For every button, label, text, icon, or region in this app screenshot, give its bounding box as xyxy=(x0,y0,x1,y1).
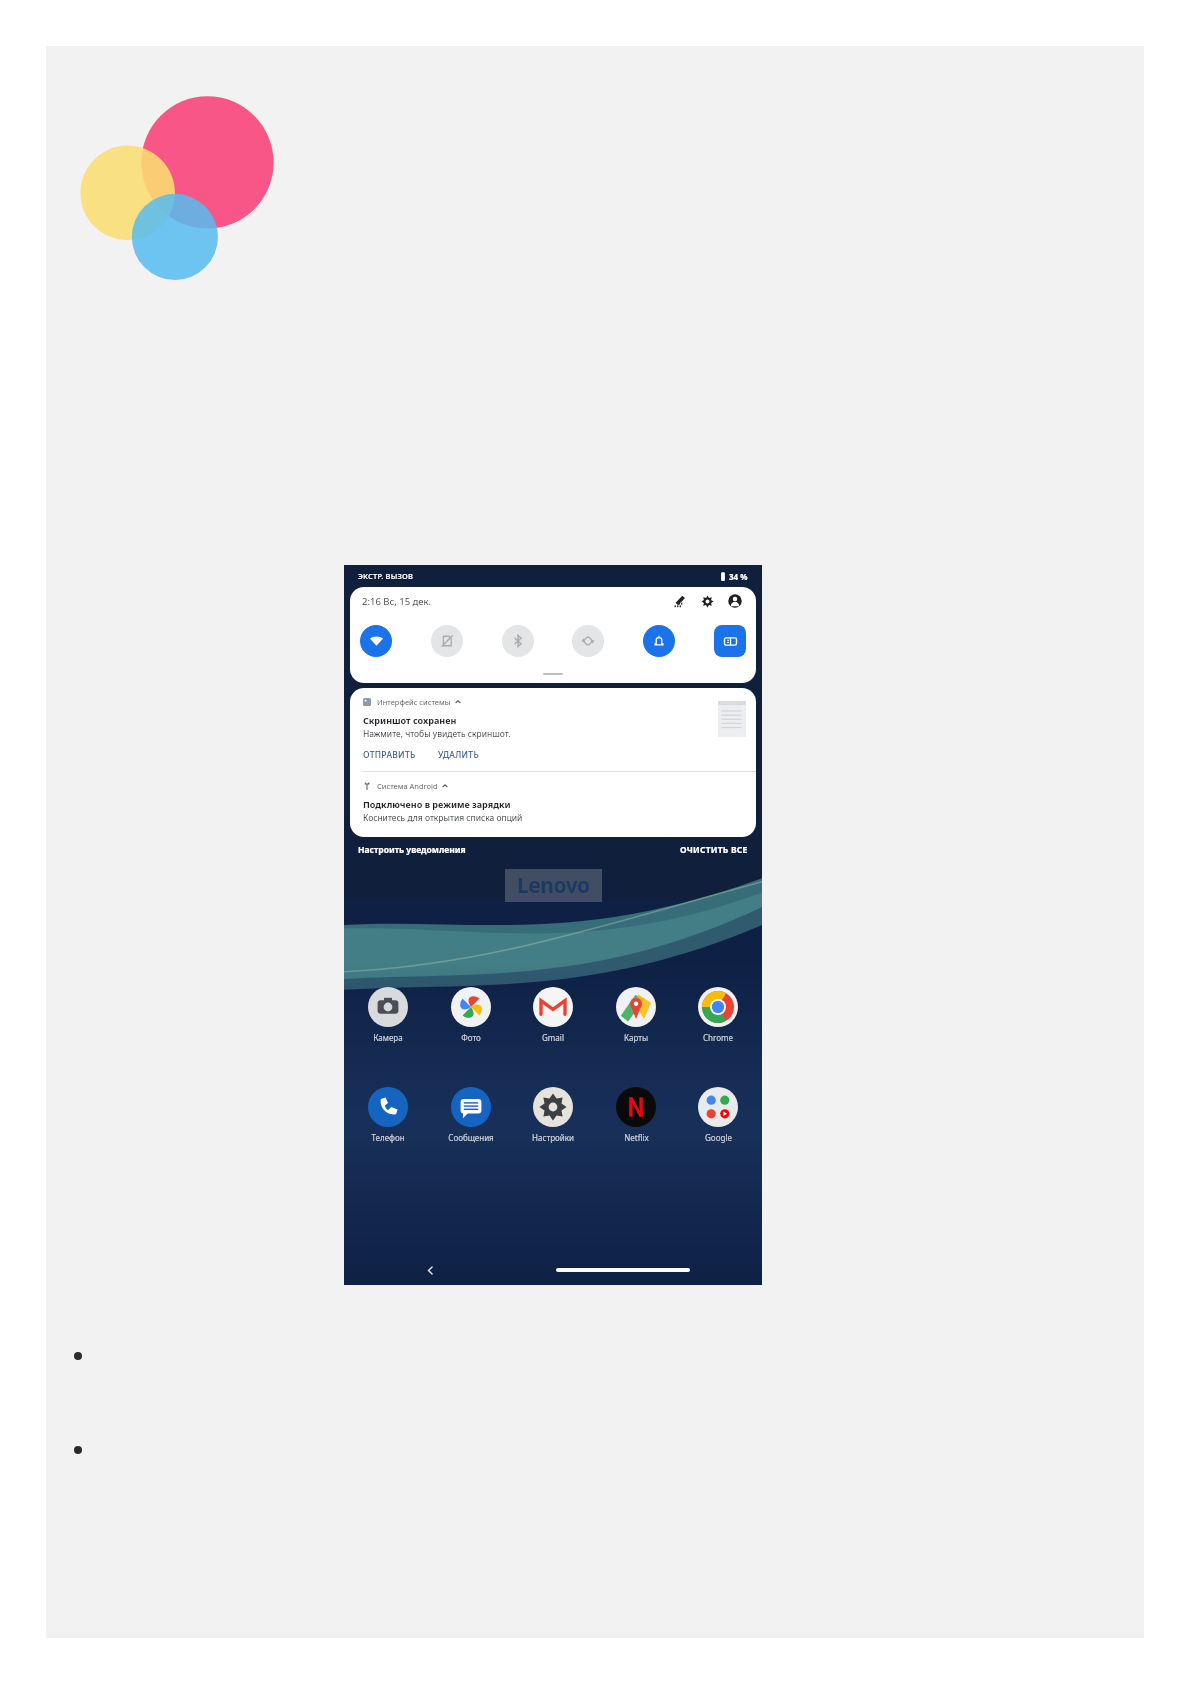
staticText: Интерфейс системы xyxy=(377,697,451,707)
button[interactable]: Gmail xyxy=(527,987,579,1043)
button[interactable]: Настройки xyxy=(527,1087,579,1143)
button[interactable]: Reading mode xyxy=(714,625,746,657)
staticText: Скриншот сохранен xyxy=(363,714,457,726)
button[interactable]: Do not disturb xyxy=(643,625,675,657)
staticText: Настройки xyxy=(532,1132,574,1143)
button[interactable]: SIM xyxy=(431,625,463,657)
staticText: Сообщения xyxy=(448,1132,494,1143)
staticText: ОЧИСТИТЬ ВСЕ xyxy=(680,844,748,856)
button[interactable]: Netflix xyxy=(610,1087,662,1143)
button[interactable]: Карты xyxy=(610,987,662,1043)
button[interactable]: Back xyxy=(422,1262,438,1278)
button[interactable]: Google xyxy=(692,1087,744,1143)
staticText: Chrome xyxy=(703,1032,733,1043)
button[interactable]: Wi-Fi xyxy=(360,625,392,657)
button[interactable]: Настроить уведомления xyxy=(358,844,466,856)
button[interactable]: Интерфейс системы xyxy=(350,688,756,771)
other: Lenovo logo xyxy=(72,86,282,282)
staticText: ЭКСТР. ВЫЗОВ xyxy=(358,571,414,581)
button[interactable]: Телефон xyxy=(362,1087,414,1143)
button[interactable]: Signal xyxy=(670,592,688,610)
button[interactable]: УДАЛИТЬ xyxy=(438,749,479,761)
button[interactable]: Auto rotate xyxy=(572,625,604,657)
staticText: Gmail xyxy=(542,1032,564,1043)
staticText: Система Android xyxy=(377,781,438,791)
staticText: Lenovo xyxy=(517,871,590,900)
button[interactable]: Chrome xyxy=(692,987,744,1043)
staticText: Фото xyxy=(461,1032,481,1043)
button[interactable]: Home xyxy=(556,1268,690,1272)
staticText: 34 % xyxy=(729,571,748,582)
staticText: Подключено в режиме зарядки xyxy=(363,798,511,810)
staticText: Настроить уведомления xyxy=(358,844,466,856)
staticText: Камера xyxy=(373,1032,403,1043)
staticText: Нажмите, чтобы увидеть скриншот. xyxy=(363,728,511,740)
button[interactable]: ОТПРАВИТЬ xyxy=(363,749,416,761)
button[interactable]: ОЧИСТИТЬ ВСЕ xyxy=(680,844,748,856)
staticText: ОТПРАВИТЬ xyxy=(363,749,416,761)
button[interactable]: User xyxy=(726,592,744,610)
staticText: Карты xyxy=(624,1032,648,1043)
staticText: 2:16 Вс, 15 дек. xyxy=(362,595,432,608)
button[interactable]: Settings xyxy=(698,592,716,610)
staticText: Телефон xyxy=(371,1132,405,1143)
button[interactable]: Сообщения xyxy=(445,1087,497,1143)
button[interactable]: Система Android xyxy=(350,772,756,837)
staticText: Google xyxy=(705,1132,732,1143)
button[interactable]: Фото xyxy=(445,987,497,1043)
button[interactable]: Bluetooth xyxy=(502,625,534,657)
button[interactable]: Камера xyxy=(362,987,414,1043)
staticText: Коснитесь для открытия списка опций xyxy=(363,812,523,824)
staticText: УДАЛИТЬ xyxy=(438,749,479,761)
staticText: Netflix xyxy=(624,1132,649,1143)
